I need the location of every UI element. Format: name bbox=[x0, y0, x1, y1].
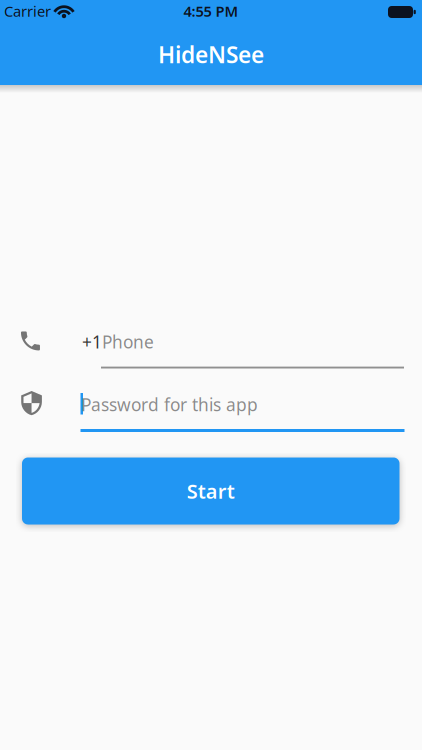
button[interactable]: Password for this app bbox=[80, 389, 405, 433]
button[interactable]: Start bbox=[22, 457, 399, 524]
button[interactable]: +1 bbox=[80, 331, 405, 371]
staticText: Start bbox=[187, 478, 235, 504]
staticText: 4:55 PM bbox=[183, 1, 238, 21]
staticText: HideNSee bbox=[158, 39, 264, 69]
staticText: Carrier bbox=[4, 1, 51, 21]
staticText: +1 bbox=[82, 330, 102, 353]
staticText: Phone bbox=[102, 330, 154, 353]
staticText: Password for this app bbox=[81, 393, 258, 416]
